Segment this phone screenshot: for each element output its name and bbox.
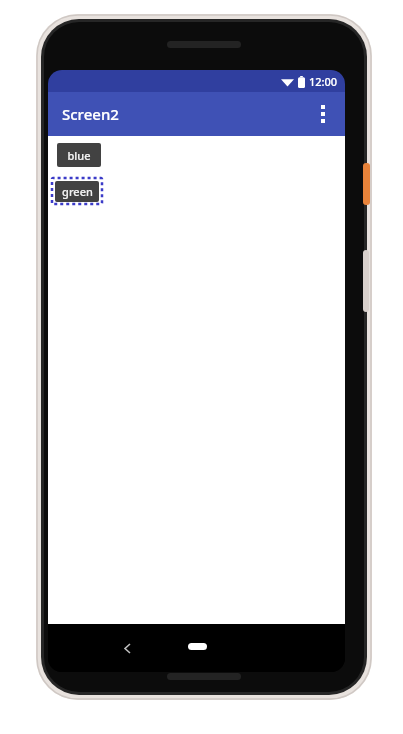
button[interactable]: Home: [175, 633, 219, 659]
button[interactable]: Back: [114, 635, 140, 661]
button[interactable]: More options: [301, 92, 345, 136]
staticText: green: [62, 184, 93, 199]
staticText: blue: [67, 148, 91, 163]
staticText: Screen2: [62, 104, 119, 124]
button[interactable]: green: [55, 181, 99, 202]
staticText: 12:00: [309, 74, 338, 89]
button[interactable]: blue: [57, 143, 101, 167]
